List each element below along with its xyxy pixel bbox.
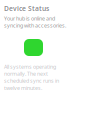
button[interactable]: Connected — [24, 39, 43, 56]
staticText: All systems operating normally. The next… — [4, 63, 59, 91]
staticText: Your hub is online and syncing with acce… — [4, 15, 66, 29]
staticText: Device Status — [4, 4, 49, 13]
